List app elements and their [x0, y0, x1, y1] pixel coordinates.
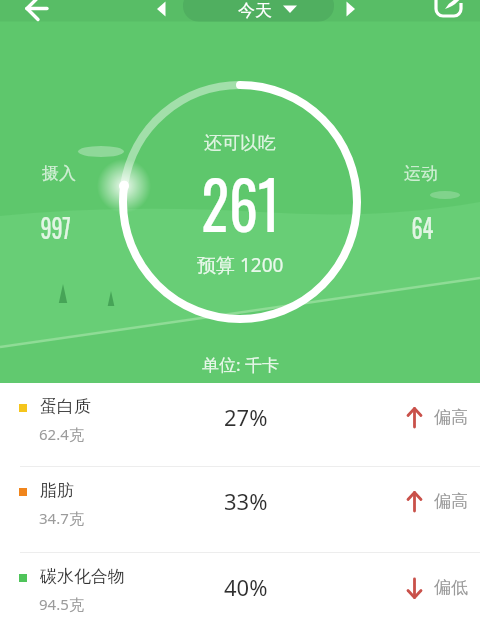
staticText: 偏高 — [434, 491, 468, 512]
button[interactable]: 蛋白质 — [0, 383, 480, 466]
button[interactable] — [430, 0, 470, 22]
staticText: 94.5克 — [39, 594, 84, 614]
staticText: 34.7克 — [39, 508, 84, 528]
staticText: 62.4克 — [39, 424, 84, 444]
staticText: 蛋白质 — [40, 396, 91, 417]
staticText: 偏高 — [434, 407, 468, 428]
staticText: 单位: 千卡 — [202, 353, 279, 376]
staticText: 33% — [224, 486, 268, 516]
staticText: 偏低 — [434, 577, 468, 598]
button[interactable]: 碳水化合物 — [0, 553, 480, 640]
button[interactable]: 脂肪 — [0, 467, 480, 552]
staticText: 64 — [411, 207, 433, 247]
staticText: 碳水化合物 — [40, 566, 125, 587]
staticText: 还可以吃 — [204, 132, 276, 155]
staticText: 今天 — [238, 0, 272, 21]
staticText: 997 — [40, 207, 72, 247]
staticText: 预算 1200 — [197, 252, 284, 278]
button[interactable] — [150, 0, 176, 22]
button[interactable] — [340, 0, 366, 22]
staticText: 脂肪 — [40, 480, 74, 501]
staticText: 摄入 — [42, 163, 76, 184]
staticText: 27% — [224, 402, 268, 432]
staticText: 运动 — [404, 163, 438, 184]
button[interactable] — [18, 0, 58, 22]
button[interactable] — [183, 0, 334, 22]
staticText: 40% — [224, 572, 268, 602]
staticText: 261 — [201, 152, 280, 251]
